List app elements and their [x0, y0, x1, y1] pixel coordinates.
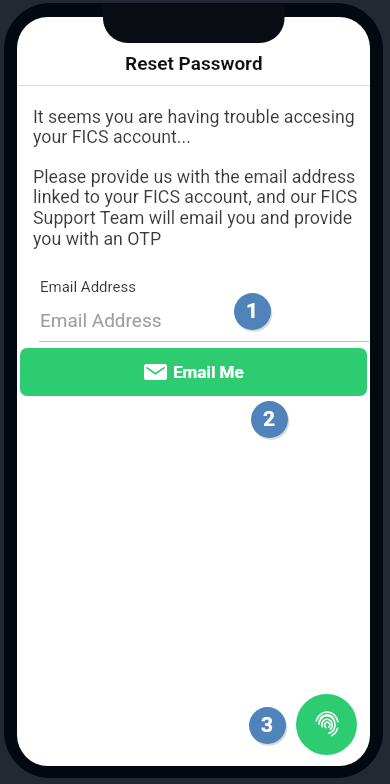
staticText: Please provide us with the email address… — [33, 166, 360, 250]
button[interactable]: 3 — [249, 707, 286, 744]
button[interactable]: Fingerprint sign in — [296, 694, 357, 755]
staticText: Reset Password — [125, 52, 263, 74]
staticText: 1 — [246, 299, 259, 324]
button[interactable]: 1 — [234, 293, 271, 330]
staticText: Email Address — [40, 278, 136, 296]
staticText: Email Address — [40, 309, 162, 331]
staticText: Email Me — [173, 362, 244, 382]
button[interactable]: Reset Password — [17, 17, 370, 85]
staticText: 3 — [261, 713, 274, 738]
staticText: 2 — [263, 407, 276, 432]
button[interactable]: Email Address — [39, 301, 369, 341]
button[interactable]: 2 — [251, 401, 288, 438]
staticText: It seems you are having trouble accesing… — [33, 106, 360, 148]
button[interactable]: Email Me — [20, 348, 367, 396]
